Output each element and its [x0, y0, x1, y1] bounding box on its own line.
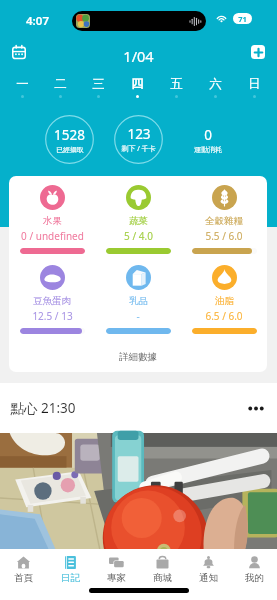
button[interactable]: More options: [241, 393, 271, 423]
staticText: 剩下 / 千卡: [121, 144, 156, 154]
button[interactable]: 商城: [139, 549, 185, 587]
button[interactable]: 運動消耗: [183, 115, 232, 164]
button[interactable]: 全穀雜糧: [181, 185, 267, 254]
button[interactable]: 乳品: [95, 265, 181, 334]
staticText: 1528: [54, 126, 85, 144]
staticText: 商城: [153, 572, 172, 584]
staticText: 0 / undefined: [21, 229, 84, 243]
staticText: 5.5 / 6.0: [205, 229, 243, 243]
button[interactable]: Calendar: [7, 40, 31, 64]
staticText: 0: [204, 126, 212, 144]
staticText: 通知: [199, 572, 218, 584]
staticText: 日記: [61, 572, 80, 584]
staticText: 我的: [245, 572, 264, 584]
staticText: 乳品: [129, 295, 148, 307]
button[interactable]: 六: [196, 68, 235, 100]
staticText: 三: [92, 76, 105, 92]
button[interactable]: 三: [79, 68, 118, 100]
staticText: 全穀雜糧: [205, 215, 243, 227]
staticText: 123: [127, 125, 151, 143]
button[interactable]: 專家: [93, 549, 139, 587]
button[interactable]: Add entry: [246, 40, 270, 64]
staticText: 蔬菜: [129, 215, 148, 227]
staticText: 日: [248, 76, 261, 92]
staticText: 首頁: [14, 572, 33, 584]
staticText: 6.5 / 6.0: [205, 309, 243, 323]
staticText: 5 / 4.0: [124, 229, 153, 243]
staticText: 運動消耗: [194, 145, 222, 154]
staticText: 水果: [43, 215, 62, 227]
button[interactable]: 通知: [185, 549, 231, 587]
staticText: 一: [16, 76, 29, 92]
staticText: 已經攝取: [56, 145, 84, 154]
button[interactable]: 豆魚蛋肉: [9, 265, 95, 334]
button[interactable]: 水果: [9, 185, 95, 254]
staticText: -: [136, 309, 140, 323]
staticText: 油脂: [215, 295, 234, 307]
button[interactable]: 日: [235, 68, 274, 100]
button[interactable]: 四: [118, 68, 157, 100]
button[interactable]: 首頁: [0, 549, 47, 587]
button[interactable]: 已經攝取: [45, 115, 94, 164]
button[interactable]: 日記: [47, 549, 93, 587]
button[interactable]: 剩下 / 千卡: [114, 115, 163, 164]
staticText: 12.5 / 13: [32, 309, 73, 323]
button[interactable]: 蔬菜: [95, 185, 181, 254]
staticText: 71: [238, 14, 247, 24]
staticText: 專家: [107, 572, 126, 584]
button[interactable]: 五: [157, 68, 196, 100]
staticText: 二: [54, 76, 67, 92]
staticText: 1/04: [123, 46, 154, 66]
button[interactable]: 詳細數據: [9, 342, 267, 372]
staticText: 豆魚蛋肉: [33, 295, 71, 307]
staticText: 五: [170, 76, 183, 92]
staticText: 4:07: [26, 13, 49, 29]
button[interactable]: 一: [3, 68, 41, 100]
staticText: 六: [209, 76, 222, 92]
button[interactable]: 我的: [231, 549, 277, 587]
staticText: 四: [131, 76, 144, 92]
button[interactable]: 油脂: [181, 265, 267, 334]
button[interactable]: 二: [41, 68, 79, 100]
staticText: 點心 21:30: [10, 399, 76, 417]
staticText: 詳細數據: [119, 351, 157, 363]
